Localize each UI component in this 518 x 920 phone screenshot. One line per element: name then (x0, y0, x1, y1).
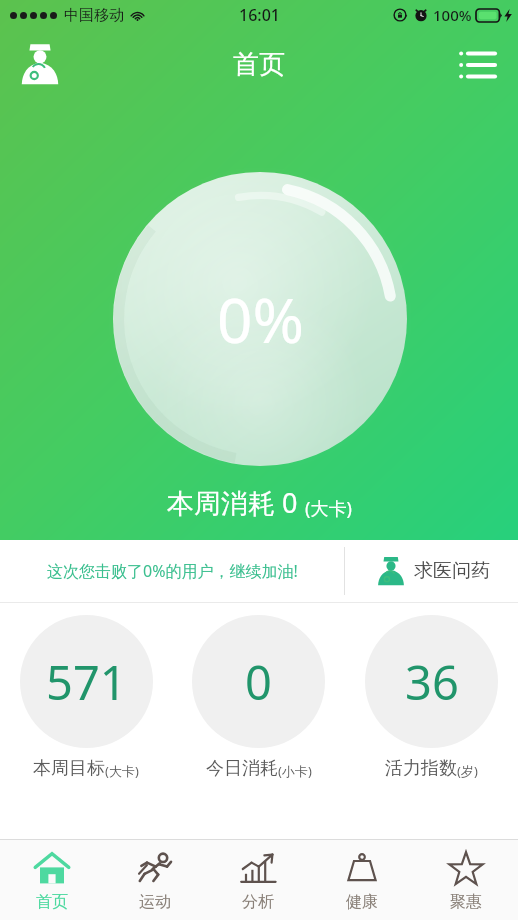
button[interactable]: 首页 (0, 840, 103, 920)
staticText: (大卡) (105, 762, 139, 780)
button[interactable]: 36 (345, 603, 518, 780)
button[interactable]: 571 (0, 603, 172, 780)
staticText: 求医问药 (414, 559, 490, 583)
staticText: 16:01 (239, 4, 280, 26)
button[interactable]: 这次您击败了0%的用户，继续加油! (0, 540, 344, 602)
staticText: (大卡) (305, 496, 352, 521)
staticText: 中国移动 (64, 6, 124, 25)
staticText: 首页 (36, 892, 68, 912)
staticText: (小卡) (278, 762, 312, 780)
staticText: 这次您击败了0%的用户，继续加油! (47, 560, 298, 582)
button[interactable]: 求医问药 (345, 540, 518, 602)
staticText: 36 (405, 650, 459, 714)
button[interactable]: 运动 (103, 840, 206, 920)
staticText: 0% (217, 277, 304, 361)
staticText: 活力指数 (385, 757, 457, 780)
button[interactable]: 分析 (206, 840, 310, 920)
button[interactable]: 0 (172, 603, 345, 780)
staticText: 首页 (233, 48, 285, 81)
staticText: 0 (245, 650, 272, 714)
staticText: 聚惠 (450, 892, 482, 912)
staticText: 571 (46, 650, 127, 714)
staticText: 分析 (242, 892, 274, 912)
staticText: 今日消耗 (206, 757, 278, 780)
staticText: 健康 (346, 892, 378, 912)
staticText: 运动 (139, 892, 171, 912)
staticText: 本周目标 (33, 757, 105, 780)
button[interactable]: 聚惠 (414, 840, 518, 920)
staticText: (岁) (457, 762, 478, 780)
staticText: 100% (433, 5, 472, 25)
button[interactable]: Doctor (8, 32, 72, 96)
button[interactable]: 健康 (310, 840, 414, 920)
staticText: 本周消耗 0 (167, 484, 305, 521)
button[interactable]: Menu (450, 38, 504, 92)
